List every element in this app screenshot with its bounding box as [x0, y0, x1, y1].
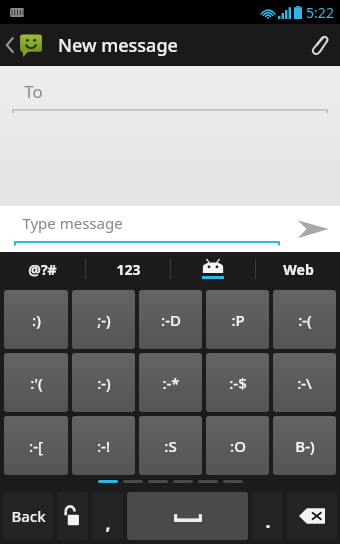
button[interactable]: Web: [256, 252, 340, 286]
staticText: :'(: [30, 373, 43, 393]
button[interactable]: Back: [0, 24, 50, 66]
staticText: Back: [11, 506, 46, 526]
staticText: :-D: [161, 310, 181, 330]
staticText: B-): [295, 436, 315, 456]
staticText: :-!: [97, 436, 110, 456]
staticText: :-[: [29, 436, 43, 456]
button[interactable]: Delete: [287, 492, 337, 540]
button[interactable]: Back: [3, 492, 53, 540]
staticText: :-): [97, 373, 111, 393]
button[interactable]: :-(: [273, 290, 336, 349]
other: Back: [6, 38, 14, 52]
staticText: New message: [58, 33, 178, 58]
button[interactable]: :-D: [139, 290, 202, 349]
staticText: ,: [105, 511, 111, 536]
button[interactable]: B-): [273, 416, 336, 475]
button[interactable]: @?#: [0, 252, 85, 286]
staticText: :-\: [297, 373, 312, 393]
staticText: ;-): [97, 310, 111, 330]
button[interactable]: :-!: [72, 416, 135, 475]
button[interactable]: ;-): [72, 290, 135, 349]
staticText: :S: [164, 436, 177, 456]
button[interactable]: :): [4, 290, 68, 349]
button[interactable]: To: [12, 80, 328, 113]
button[interactable]: :S: [139, 416, 202, 475]
staticText: To: [24, 80, 43, 103]
staticText: :O: [230, 436, 246, 456]
staticText: Type message: [22, 213, 123, 233]
button[interactable]: :-*: [139, 353, 202, 412]
staticText: :-*: [162, 373, 180, 393]
button[interactable]: Shift lock: [57, 492, 88, 540]
button[interactable]: 123: [86, 252, 170, 286]
button[interactable]: :-\: [273, 353, 336, 412]
staticText: Web: [283, 260, 314, 279]
button[interactable]: :-): [72, 353, 135, 412]
button[interactable]: ,: [92, 492, 123, 540]
button[interactable]: :'(: [4, 353, 68, 412]
staticText: :P: [231, 310, 245, 330]
button[interactable]: .: [252, 492, 283, 540]
button[interactable]: :-[: [4, 416, 68, 475]
button[interactable]: Send: [286, 206, 340, 252]
button[interactable]: :-$: [206, 353, 269, 412]
staticText: 5:22: [306, 3, 334, 22]
button[interactable]: Attach: [296, 24, 340, 66]
staticText: :): [32, 310, 41, 330]
staticText: :-(: [298, 310, 312, 330]
staticText: .: [265, 509, 271, 534]
button[interactable]: :P: [206, 290, 269, 349]
button[interactable]: Space: [127, 492, 248, 540]
staticText: 123: [116, 260, 141, 279]
button[interactable]: Emoticons: [171, 252, 255, 286]
button[interactable]: :O: [206, 416, 269, 475]
staticText: @?#: [28, 260, 57, 279]
button[interactable]: Type message: [14, 206, 280, 252]
staticText: :-$: [229, 373, 247, 393]
